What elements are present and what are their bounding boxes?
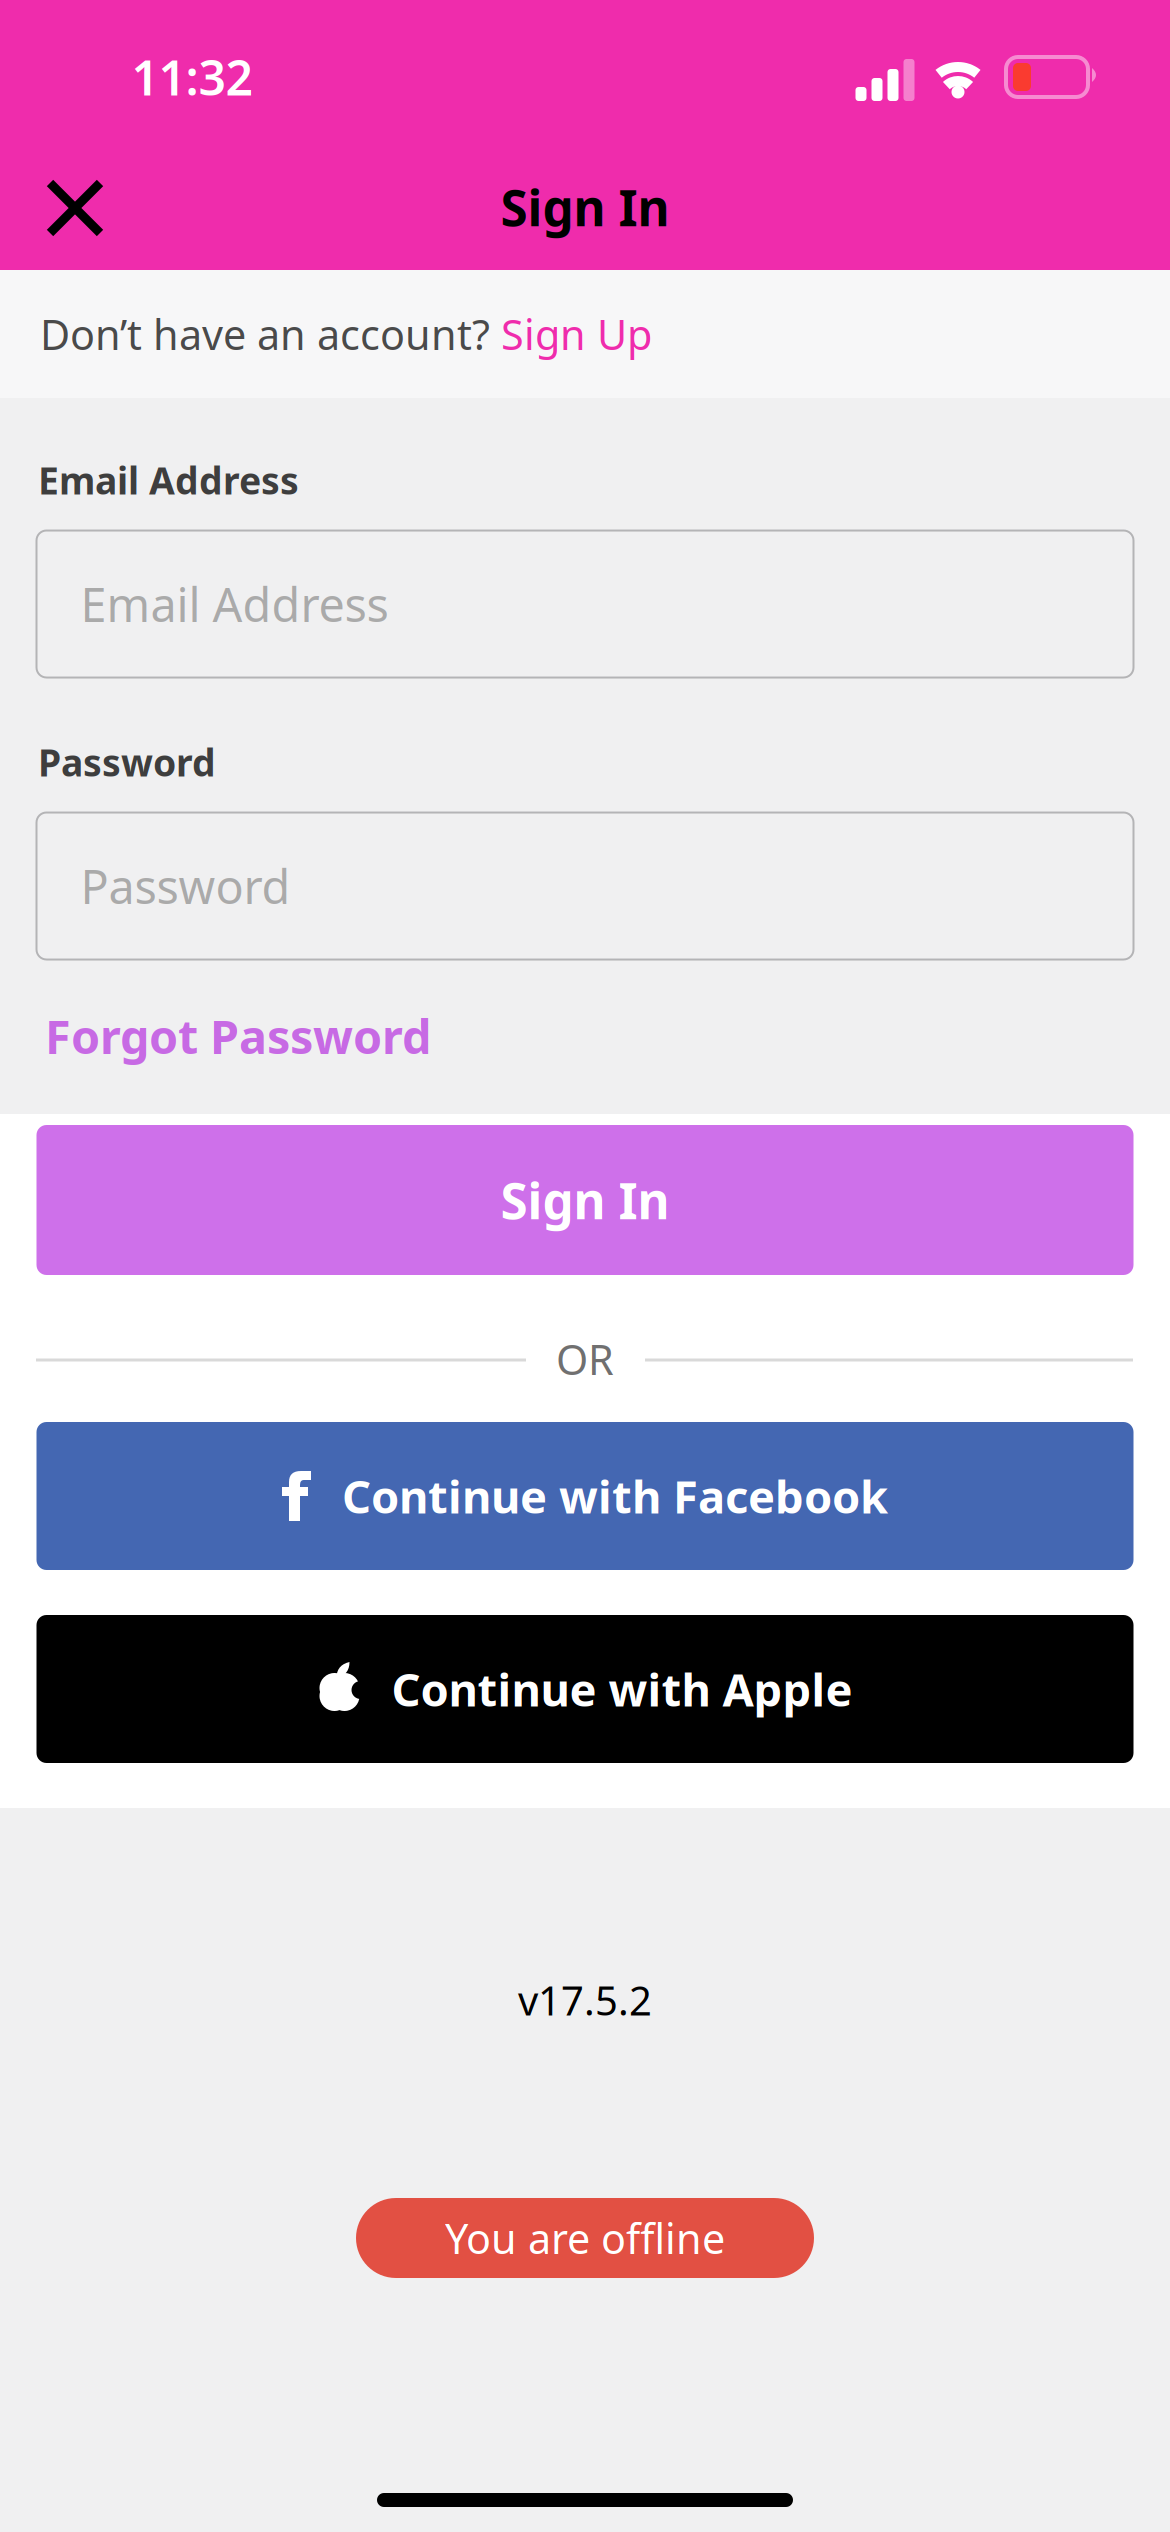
staticText: 11:32 [131, 45, 252, 109]
staticText: Email Address [80, 573, 388, 635]
button[interactable]: You are offline [356, 2198, 814, 2278]
staticText: Continue with Facebook [342, 1466, 888, 1526]
staticText: v17.5.2 [518, 1973, 652, 2026]
staticText: Sign Up [501, 307, 652, 361]
staticText: OR [556, 1332, 614, 1386]
staticText: Email Address [38, 455, 299, 505]
button[interactable]: Sign Up [501, 307, 652, 361]
button[interactable]: Continue with Apple [36, 1615, 1133, 1763]
button[interactable]: Continue with Facebook [36, 1422, 1133, 1570]
staticText: Password [80, 855, 290, 917]
staticText: Forgot Password [45, 1005, 431, 1067]
staticText: Don’t have an account? [40, 307, 501, 361]
button[interactable]: Sign In [36, 1125, 1133, 1275]
staticText: Sign In [500, 1167, 669, 1233]
staticText: Sign In [500, 174, 669, 240]
staticText: Continue with Apple [391, 1659, 852, 1719]
button[interactable]: Close [25, 158, 125, 258]
staticText: Password [38, 737, 216, 787]
staticText: You are offline [445, 2211, 725, 2265]
button[interactable]: Forgot Password [45, 1005, 431, 1067]
